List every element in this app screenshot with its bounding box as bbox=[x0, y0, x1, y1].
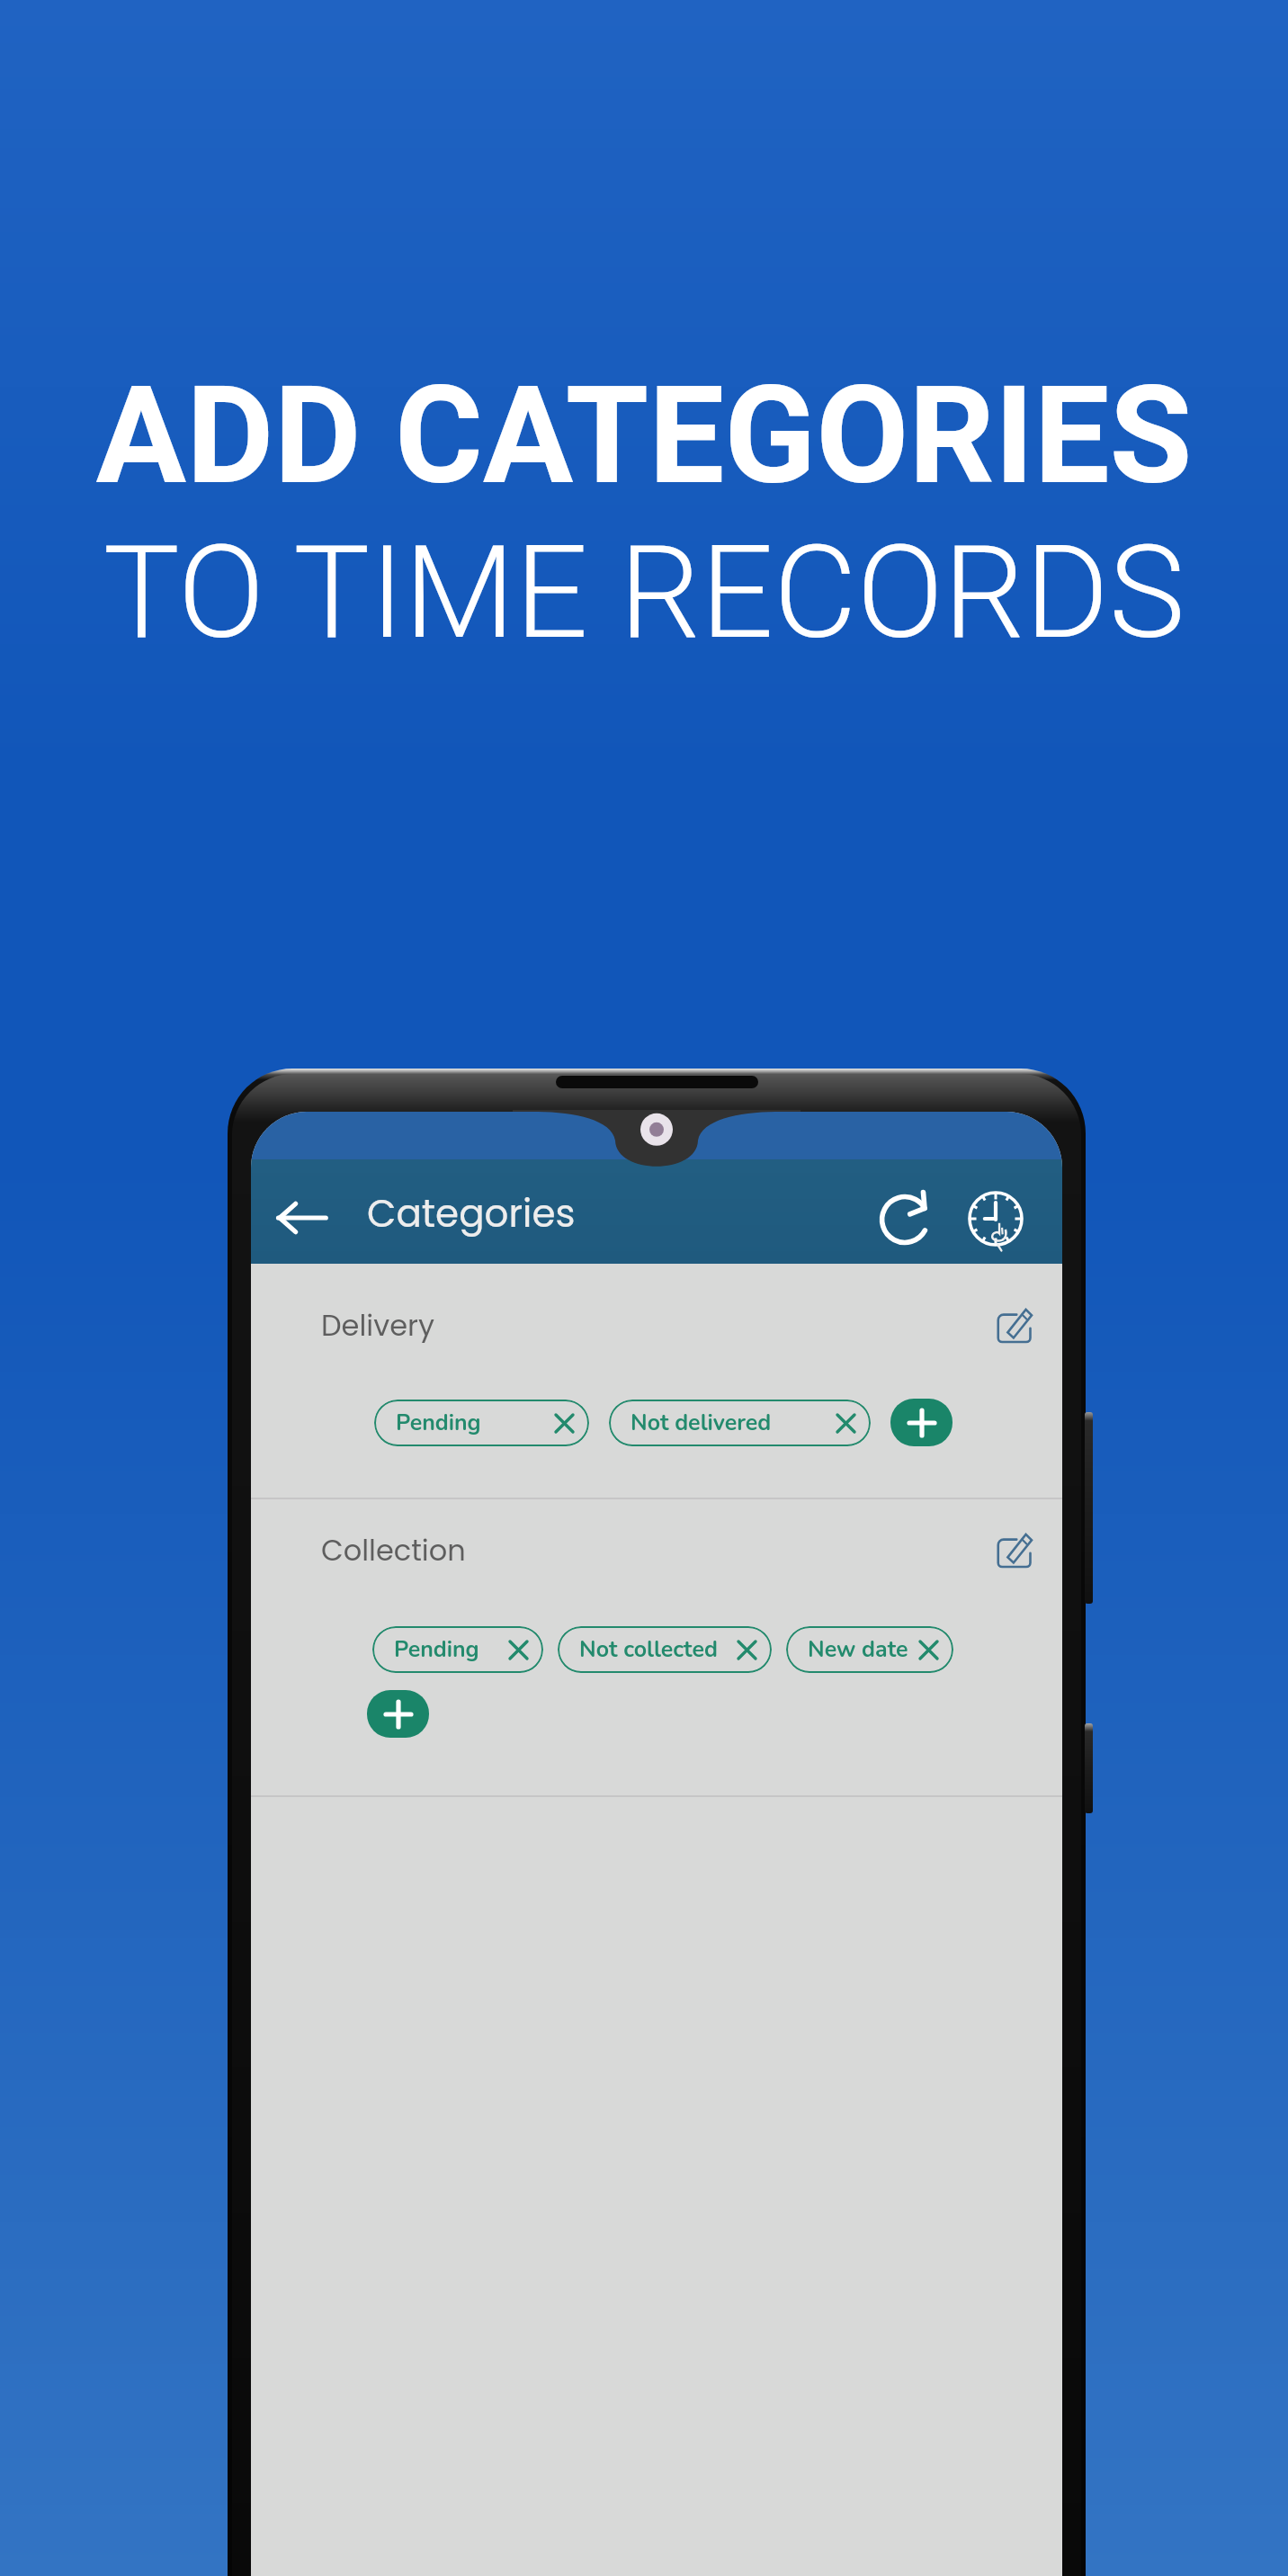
button[interactable]: Edit Collection bbox=[986, 1521, 1043, 1579]
button[interactable]: Add bbox=[890, 1399, 953, 1446]
staticText: Pending bbox=[394, 1634, 479, 1665]
button[interactable]: Refresh bbox=[870, 1183, 942, 1255]
staticText: TO TIME RECORDS bbox=[0, 518, 1288, 668]
button[interactable]: Add bbox=[367, 1690, 429, 1738]
button[interactable]: Pending bbox=[374, 1400, 589, 1446]
button[interactable]: Edit Delivery bbox=[986, 1296, 1043, 1354]
staticText: ADD CATEGORIES bbox=[0, 357, 1288, 514]
staticText: Collection bbox=[321, 1530, 466, 1570]
button[interactable]: Not delivered bbox=[609, 1400, 871, 1446]
button[interactable]: Not collected bbox=[558, 1626, 772, 1673]
staticText: Delivery bbox=[321, 1305, 434, 1346]
button[interactable]: Pending bbox=[372, 1626, 543, 1673]
staticText: Not delivered bbox=[631, 1408, 772, 1438]
button[interactable]: Back bbox=[265, 1182, 337, 1254]
staticText: Pending bbox=[396, 1408, 481, 1438]
staticText: Categories bbox=[367, 1187, 576, 1240]
staticText: Not collected bbox=[579, 1634, 718, 1665]
button[interactable]: Time records bbox=[960, 1183, 1032, 1255]
staticText: New date bbox=[808, 1634, 908, 1665]
button[interactable]: New date bbox=[786, 1626, 953, 1673]
